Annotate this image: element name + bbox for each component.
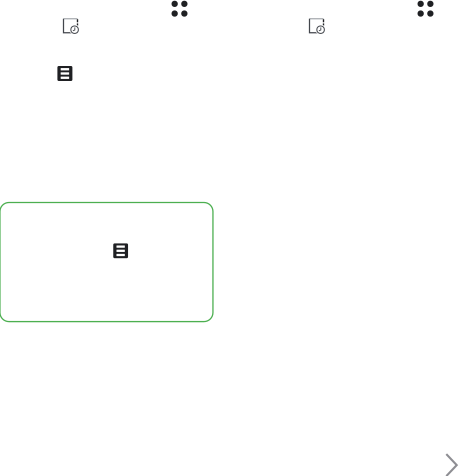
button[interactable]: Recents	[62, 16, 80, 34]
button[interactable]: Next	[445, 453, 458, 476]
button[interactable]: Grid view	[417, 1, 433, 17]
button[interactable]: Recents	[308, 16, 326, 34]
button[interactable]: Grid view	[171, 1, 187, 17]
button[interactable]: List view	[57, 66, 72, 81]
button[interactable]: Card	[0, 202, 213, 322]
